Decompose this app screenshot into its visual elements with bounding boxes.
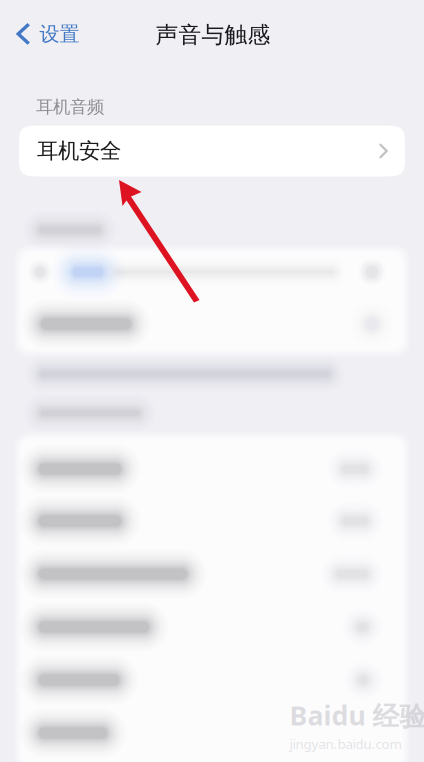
staticText: 设置 xyxy=(39,22,79,46)
staticText: 声音与触感 xyxy=(155,21,270,49)
button[interactable]: 耳机安全 xyxy=(19,125,405,176)
staticText: jingyan.baidu.com xyxy=(289,735,401,753)
staticText: 耳机音频 xyxy=(36,96,104,118)
button[interactable]: 设置 xyxy=(2,13,91,55)
staticText: Baidu 经验 xyxy=(289,697,424,733)
staticText: 耳机安全 xyxy=(37,138,121,164)
